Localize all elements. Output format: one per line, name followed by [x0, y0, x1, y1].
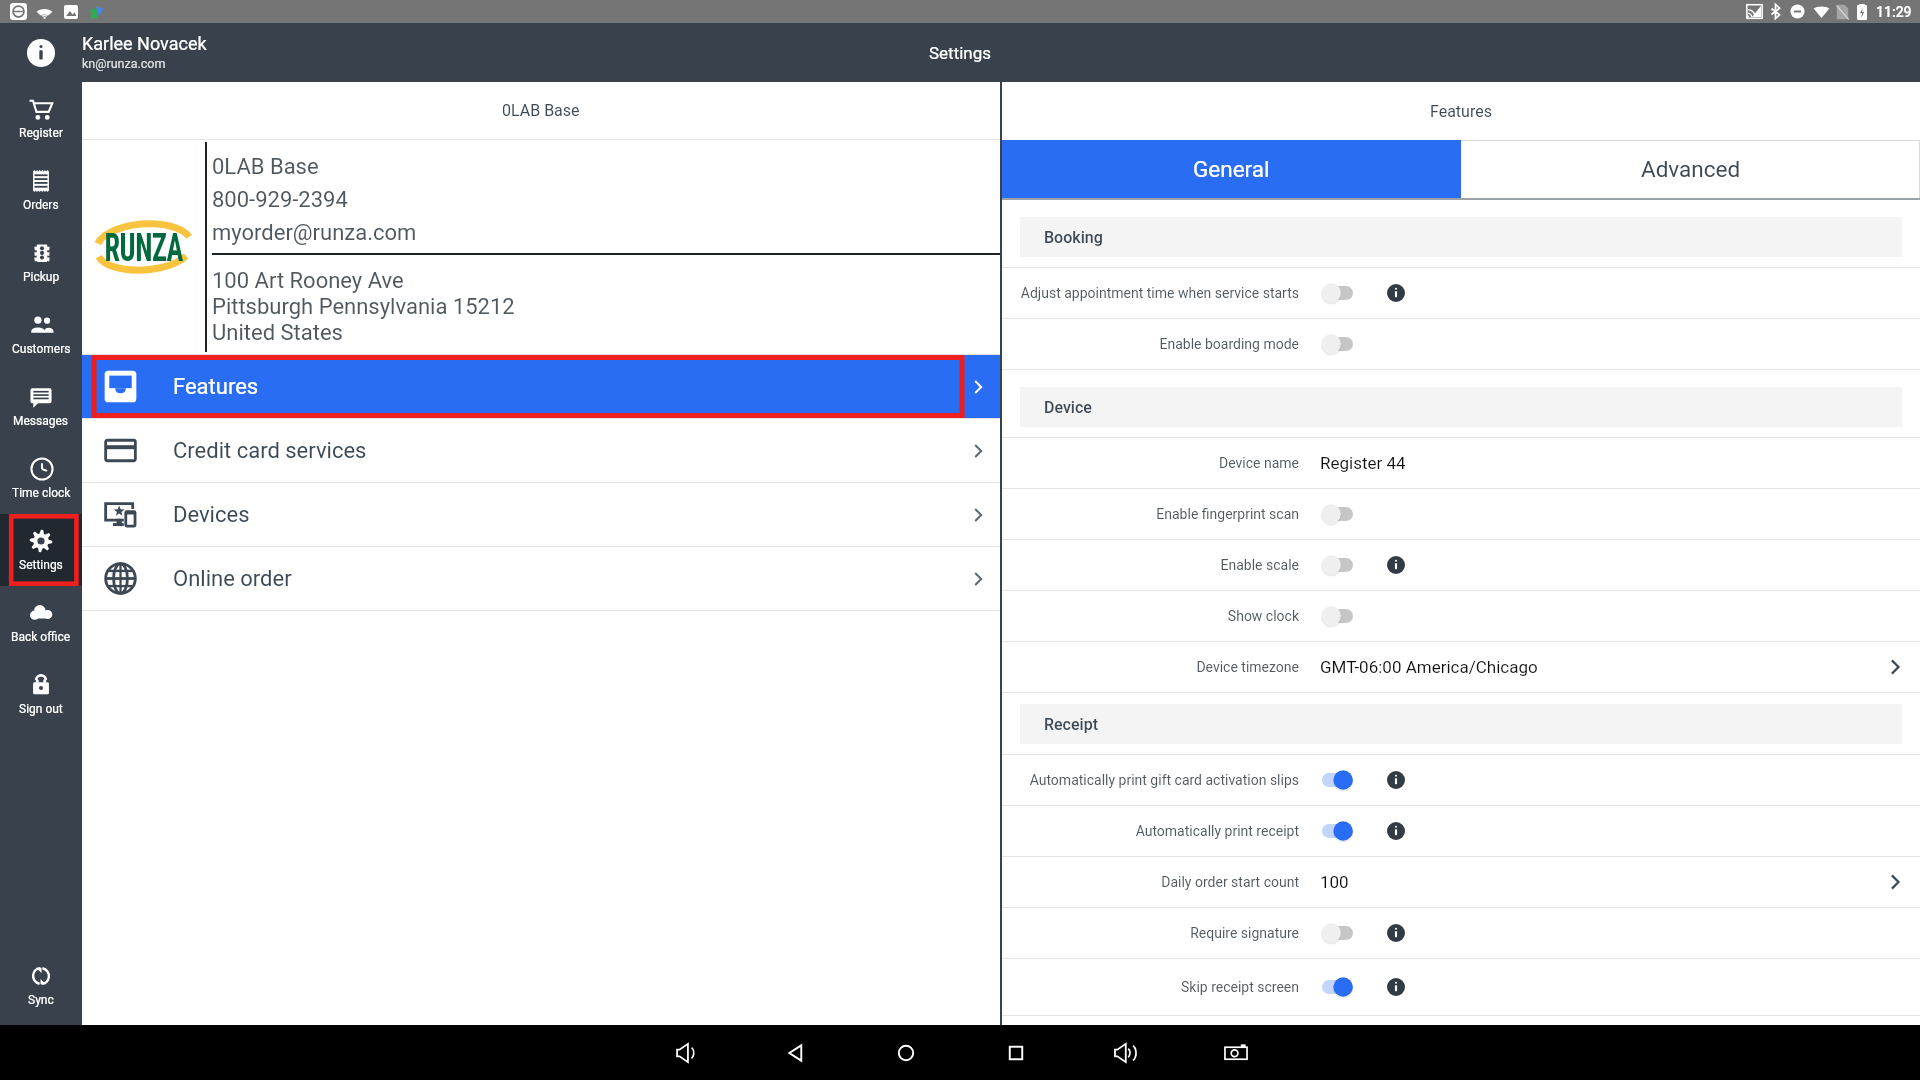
button[interactable]: Automatically print receipt [1002, 806, 1920, 856]
button[interactable]: Info [0, 23, 82, 82]
staticText: General [1193, 156, 1270, 182]
staticText: Customers [12, 342, 71, 356]
staticText: Devices [173, 502, 250, 528]
button[interactable]: Screenshot [1214, 1031, 1258, 1075]
staticText: Pittsburgh Pennsylvania 15212 [212, 294, 515, 320]
button[interactable]: Enable scale [1002, 540, 1920, 590]
staticText: Karlee Novacek [82, 33, 207, 54]
staticText: Automatically print receipt [1135, 823, 1299, 839]
staticText: Credit card services [173, 438, 367, 464]
staticText: Features [1430, 102, 1492, 121]
staticText: Booking [1044, 228, 1103, 247]
button[interactable]: Home [884, 1031, 928, 1075]
staticText: Skip receipt screen [1180, 979, 1299, 995]
staticText: Settings [929, 43, 992, 63]
button[interactable]: Show clock [1002, 591, 1920, 641]
staticText: GMT-06:00 America/Chicago [1320, 657, 1538, 677]
button[interactable]: Sync [0, 956, 82, 1014]
button[interactable]: Volume down [664, 1031, 708, 1075]
staticText: Device timezone [1196, 659, 1299, 675]
button[interactable]: Online order [82, 547, 1000, 610]
staticText: Orders [23, 198, 59, 212]
staticText: Device name [1219, 455, 1299, 471]
staticText: 0LAB Base [502, 101, 580, 120]
button[interactable]: Advanced [1461, 140, 1920, 198]
button[interactable]: Back [774, 1031, 818, 1075]
staticText: Show clock [1227, 608, 1299, 624]
button[interactable]: Require signature [1002, 908, 1920, 958]
button[interactable]: Register [0, 82, 82, 154]
button[interactable]: Adjust appointment time when service sta… [1002, 268, 1920, 318]
staticText: 800-929-2394 [212, 187, 348, 213]
staticText: 0LAB Base [212, 154, 319, 180]
button[interactable]: Credit card services [82, 419, 1000, 482]
staticText: Time clock [12, 486, 71, 500]
button[interactable]: Back office [0, 586, 82, 658]
button[interactable]: Skip receipt screen [1002, 959, 1920, 1015]
staticText: 100 [1320, 872, 1349, 892]
button[interactable]: Settings [0, 514, 82, 586]
button[interactable]: Enable fingerprint scan [1002, 489, 1920, 539]
staticText: Pickup [23, 270, 60, 284]
staticText: Receipt [1044, 715, 1098, 734]
button[interactable]: Enable boarding mode [1002, 319, 1920, 369]
staticText: Daily order start count [1161, 874, 1299, 890]
staticText: Back office [11, 630, 71, 644]
staticText: Settings [19, 558, 63, 572]
button[interactable]: Automatically print gift card activation… [1002, 755, 1920, 805]
staticText: Register 44 [1320, 453, 1406, 473]
button[interactable]: Device name [1002, 438, 1920, 488]
staticText: Enable boarding mode [1159, 336, 1299, 352]
staticText: United States [212, 320, 343, 346]
button[interactable]: Sign out [0, 658, 82, 730]
staticText: Adjust appointment time when service sta… [1020, 285, 1299, 301]
button[interactable]: Volume up [1104, 1031, 1148, 1075]
button[interactable]: Devices [82, 483, 1000, 546]
button[interactable]: Messages [0, 370, 82, 442]
button[interactable]: General [1002, 140, 1461, 198]
staticText: Sign out [19, 702, 63, 716]
button[interactable]: Orders [0, 154, 82, 226]
staticText: Register [19, 126, 63, 140]
staticText: Automatically print gift card activation… [1029, 772, 1299, 788]
button[interactable]: Device timezone [1002, 642, 1920, 692]
button[interactable]: Pickup [0, 226, 82, 298]
staticText: RUNZA [104, 225, 183, 270]
staticText: Enable fingerprint scan [1156, 506, 1299, 522]
staticText: Device [1044, 398, 1092, 417]
button[interactable]: Recents [994, 1031, 1038, 1075]
staticText: Enable scale [1220, 557, 1299, 573]
staticText: kn@runza.com [82, 56, 166, 71]
staticText: Messages [13, 414, 69, 428]
staticText: Require signature [1190, 925, 1299, 941]
staticText: Advanced [1641, 156, 1741, 182]
button[interactable]: Time clock [0, 442, 82, 514]
staticText: 11:29 [1876, 4, 1912, 20]
staticText: Features [173, 374, 259, 400]
staticText: 100 Art Rooney Ave [212, 268, 404, 294]
staticText: Sync [28, 993, 54, 1007]
button[interactable]: Daily order start count [1002, 857, 1920, 907]
button[interactable]: Customers [0, 298, 82, 370]
staticText: myorder@runza.com [212, 220, 417, 246]
button[interactable]: Features [82, 355, 1000, 418]
staticText: Online order [173, 566, 292, 592]
